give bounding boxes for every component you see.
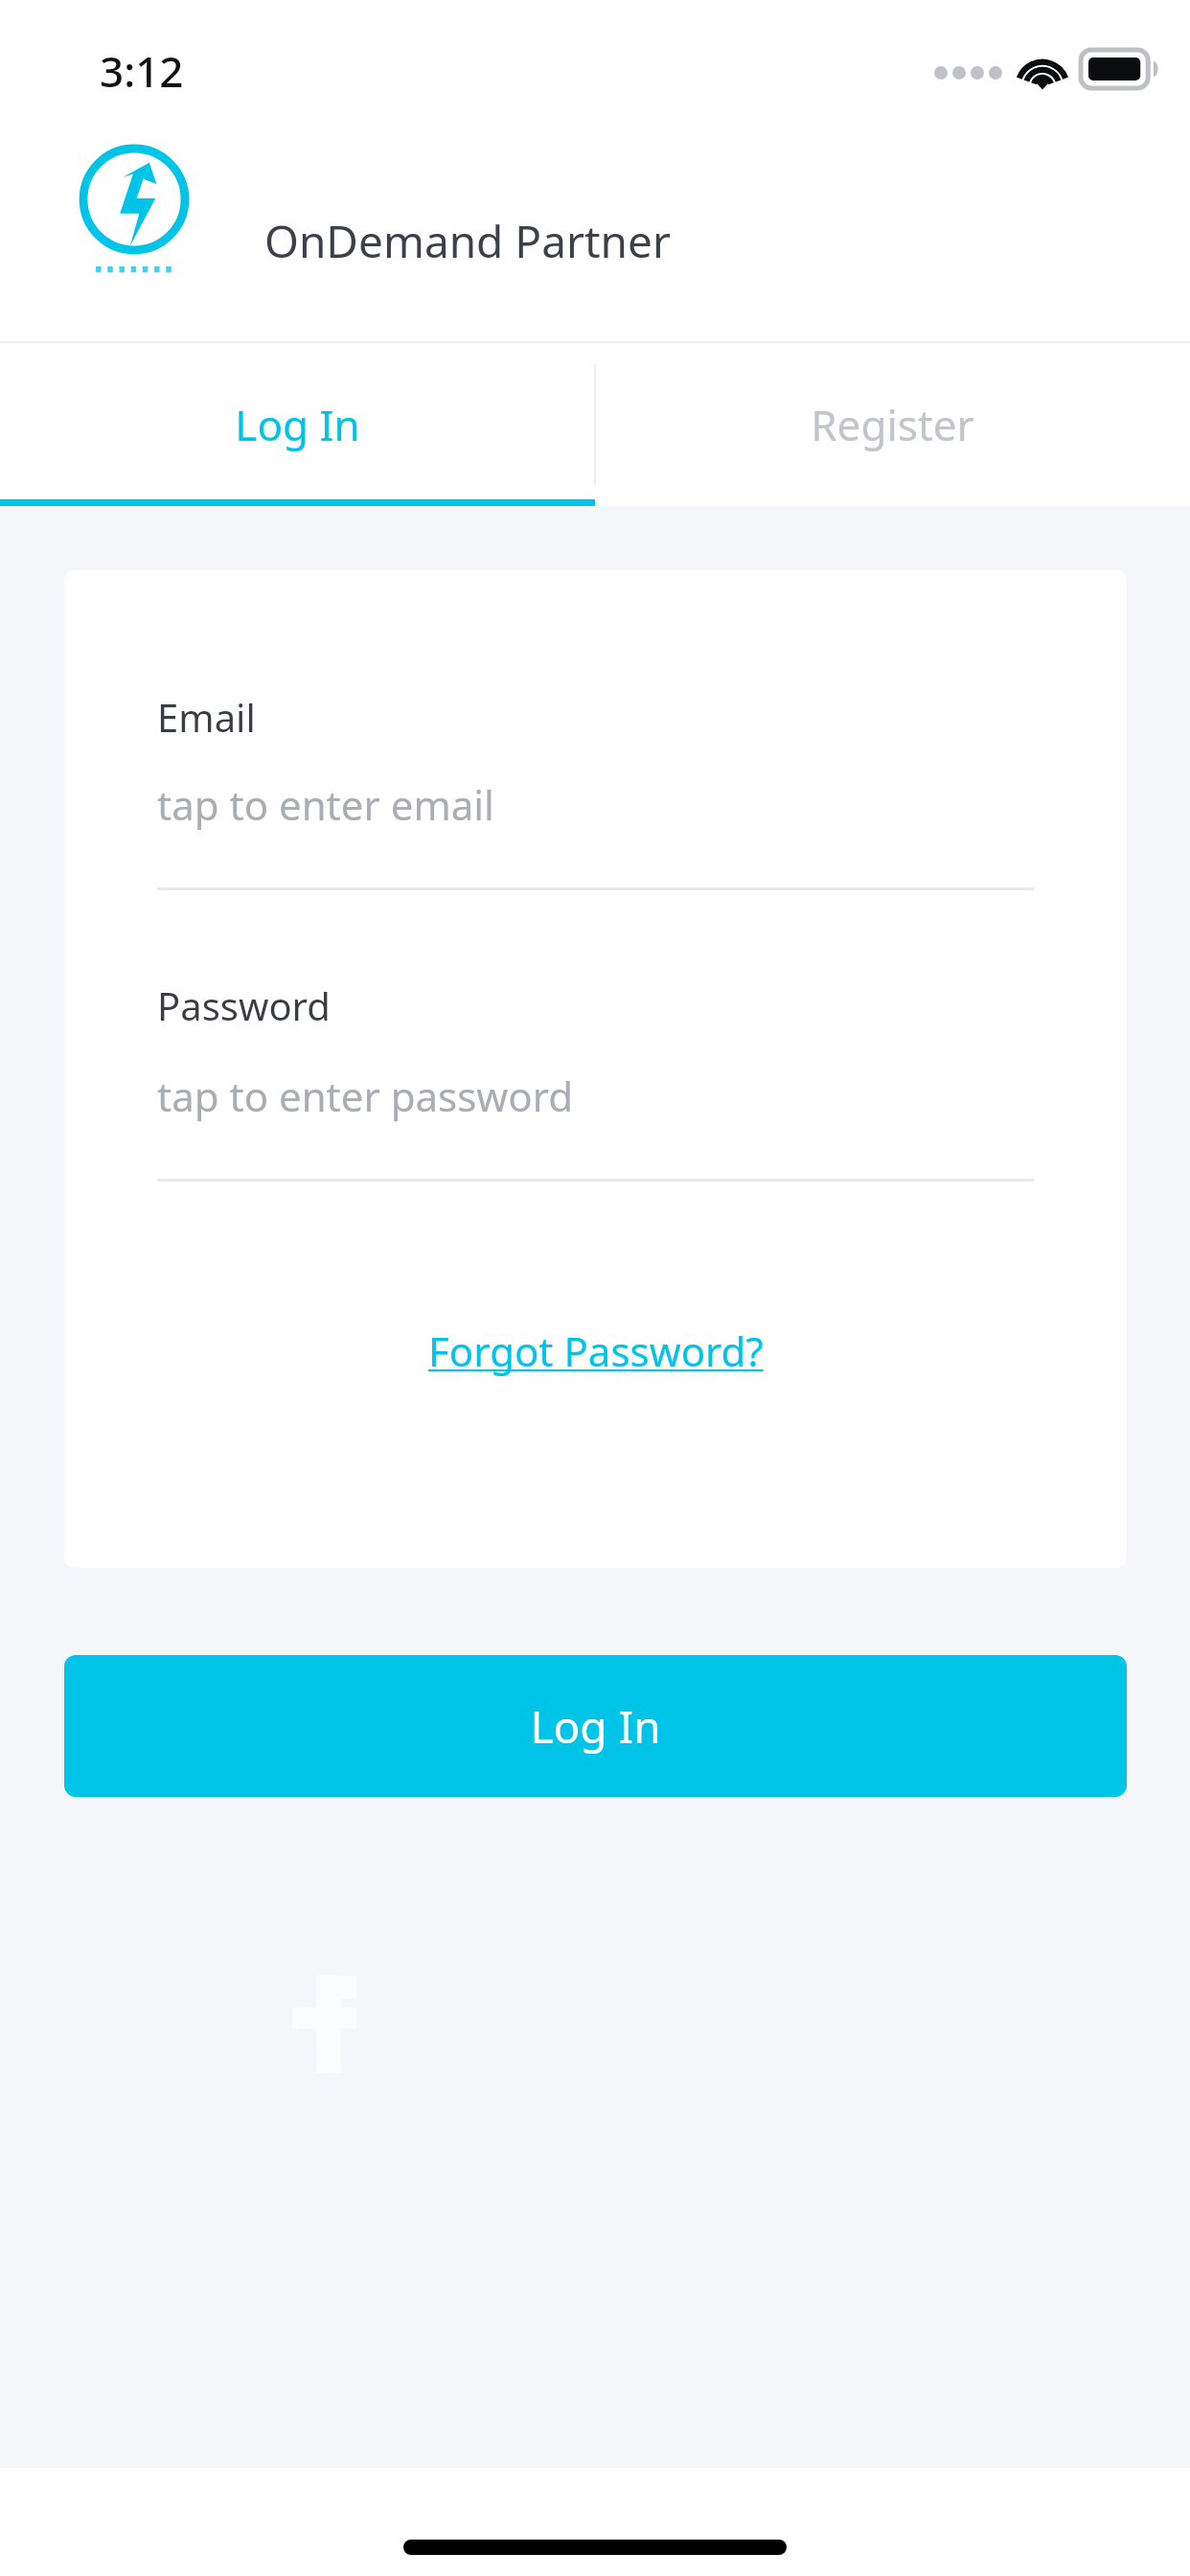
staticText: Email xyxy=(157,691,256,743)
button[interactable]: tap to enter password xyxy=(157,1061,1034,1182)
staticText: Forgot Password? xyxy=(428,1323,764,1378)
staticText: tap to enter password xyxy=(157,1069,574,1123)
button[interactable]: Forgot Password? xyxy=(415,1314,777,1388)
staticText: 3:12 xyxy=(100,42,184,100)
button[interactable]: Sign in with Facebook xyxy=(287,1967,368,2073)
staticText: OnDemand Partner xyxy=(264,211,671,271)
button[interactable]: Log In xyxy=(64,1655,1127,1797)
staticText: Password xyxy=(157,979,331,1031)
staticText: Log In xyxy=(235,396,360,453)
button[interactable]: Register xyxy=(595,343,1190,506)
button[interactable]: Log In xyxy=(0,343,595,506)
staticText: Log In xyxy=(530,1696,661,1757)
staticText: tap to enter email xyxy=(157,777,494,832)
button[interactable]: tap to enter email xyxy=(157,770,1034,890)
staticText: Register xyxy=(811,396,974,453)
